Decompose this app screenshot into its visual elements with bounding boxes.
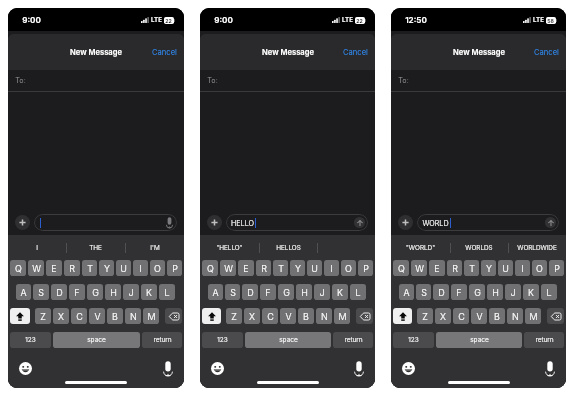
button[interactable]: return: [524, 332, 564, 348]
button[interactable]: A: [208, 284, 223, 300]
button[interactable]: W: [28, 260, 44, 276]
button[interactable]: Backspace: [547, 308, 564, 324]
button[interactable]: I'M: [125, 235, 184, 260]
button[interactable]: space: [53, 332, 140, 348]
button[interactable]: M: [525, 308, 541, 324]
button[interactable]: G: [278, 284, 294, 300]
button[interactable]: space: [245, 332, 331, 348]
button[interactable]: Dictate: [34, 214, 177, 231]
button[interactable]: Z: [35, 308, 51, 324]
button[interactable]: H: [296, 284, 312, 300]
button[interactable]: F: [260, 284, 276, 300]
button[interactable]: Y: [481, 260, 496, 276]
button[interactable]: W: [411, 260, 427, 276]
button[interactable]: F: [451, 284, 467, 300]
button[interactable]: J: [123, 284, 139, 300]
button[interactable]: C: [262, 308, 278, 324]
button[interactable]: WORLDS: [450, 235, 508, 260]
button[interactable]: R: [256, 260, 271, 276]
button[interactable]: K: [141, 284, 157, 300]
button[interactable]: Cancel: [145, 42, 184, 63]
button[interactable]: N: [507, 308, 523, 324]
button[interactable]: Z: [417, 308, 433, 324]
button[interactable]: Send: [545, 217, 556, 228]
button[interactable]: O: [532, 260, 547, 276]
button[interactable]: To:: [8, 70, 184, 91]
button[interactable]: B: [107, 308, 123, 324]
button[interactable]: K: [523, 284, 539, 300]
button[interactable]: V: [471, 308, 487, 324]
button[interactable]: Z: [226, 308, 242, 324]
button[interactable]: HELLOS: [259, 235, 317, 260]
button[interactable]: Backspace: [356, 308, 373, 324]
button[interactable]: X: [435, 308, 451, 324]
button[interactable]: Y: [290, 260, 305, 276]
button[interactable]: I: [133, 260, 148, 276]
button[interactable]: P: [549, 260, 564, 276]
button[interactable]: THE: [66, 235, 125, 260]
button[interactable]: M: [334, 308, 350, 324]
button[interactable]: G: [469, 284, 485, 300]
button[interactable]: V: [89, 308, 105, 324]
button[interactable]: P: [167, 260, 182, 276]
button[interactable]: S: [225, 284, 240, 300]
button[interactable]: I: [515, 260, 530, 276]
button[interactable]: E: [429, 260, 445, 276]
button[interactable]: N: [125, 308, 141, 324]
button[interactable]: Q: [202, 260, 218, 276]
button[interactable]: Add attachment: [207, 215, 222, 230]
button[interactable]: WORLDWIDE: [508, 235, 566, 260]
button[interactable]: "WORLD": [391, 235, 450, 260]
button[interactable]: A: [399, 284, 414, 300]
button[interactable]: I: [324, 260, 339, 276]
button[interactable]: R: [447, 260, 462, 276]
button[interactable]: "HELLO": [200, 235, 259, 260]
button[interactable]: U: [307, 260, 322, 276]
button[interactable]: B: [489, 308, 505, 324]
button[interactable]: Dictate: [166, 217, 173, 228]
button[interactable]: Dictate: [163, 361, 173, 376]
button[interactable]: Emoji: [19, 362, 32, 375]
button[interactable]: I: [8, 235, 66, 260]
button[interactable]: U: [498, 260, 513, 276]
button[interactable]: Add attachment: [398, 215, 413, 230]
button[interactable]: Cancel: [336, 42, 375, 63]
button[interactable]: W: [220, 260, 236, 276]
button[interactable]: 123: [393, 332, 434, 348]
button[interactable]: D: [51, 284, 67, 300]
button[interactable]: K: [332, 284, 348, 300]
button[interactable]: J: [505, 284, 521, 300]
button[interactable]: WORLD: [417, 214, 559, 231]
button[interactable]: T: [464, 260, 479, 276]
button[interactable]: A: [16, 284, 31, 300]
button[interactable]: H: [487, 284, 503, 300]
button[interactable]: B: [298, 308, 314, 324]
button[interactable]: R: [64, 260, 80, 276]
button[interactable]: D: [242, 284, 258, 300]
button[interactable]: E: [46, 260, 62, 276]
button[interactable]: S: [33, 284, 49, 300]
button[interactable]: return: [142, 332, 182, 348]
button[interactable]: X: [244, 308, 260, 324]
button[interactable]: Shift: [202, 308, 221, 324]
button[interactable]: U: [116, 260, 131, 276]
button[interactable]: Q: [10, 260, 26, 276]
button[interactable]: N: [316, 308, 332, 324]
button[interactable]: P: [358, 260, 373, 276]
button[interactable]: 123: [202, 332, 243, 348]
button[interactable]: Emoji: [211, 362, 224, 375]
button[interactable]: E: [238, 260, 254, 276]
button[interactable]: X: [53, 308, 69, 324]
button[interactable]: To:: [391, 70, 566, 91]
button[interactable]: Dictate: [545, 361, 555, 376]
button[interactable]: L: [159, 284, 175, 300]
button[interactable]: To:: [200, 70, 375, 91]
button[interactable]: L: [541, 284, 557, 300]
button[interactable]: S: [416, 284, 431, 300]
button[interactable]: D: [433, 284, 449, 300]
button[interactable]: Backspace: [165, 308, 182, 324]
button[interactable]: L: [350, 284, 366, 300]
button[interactable]: V: [280, 308, 296, 324]
button[interactable]: Shift: [393, 308, 412, 324]
